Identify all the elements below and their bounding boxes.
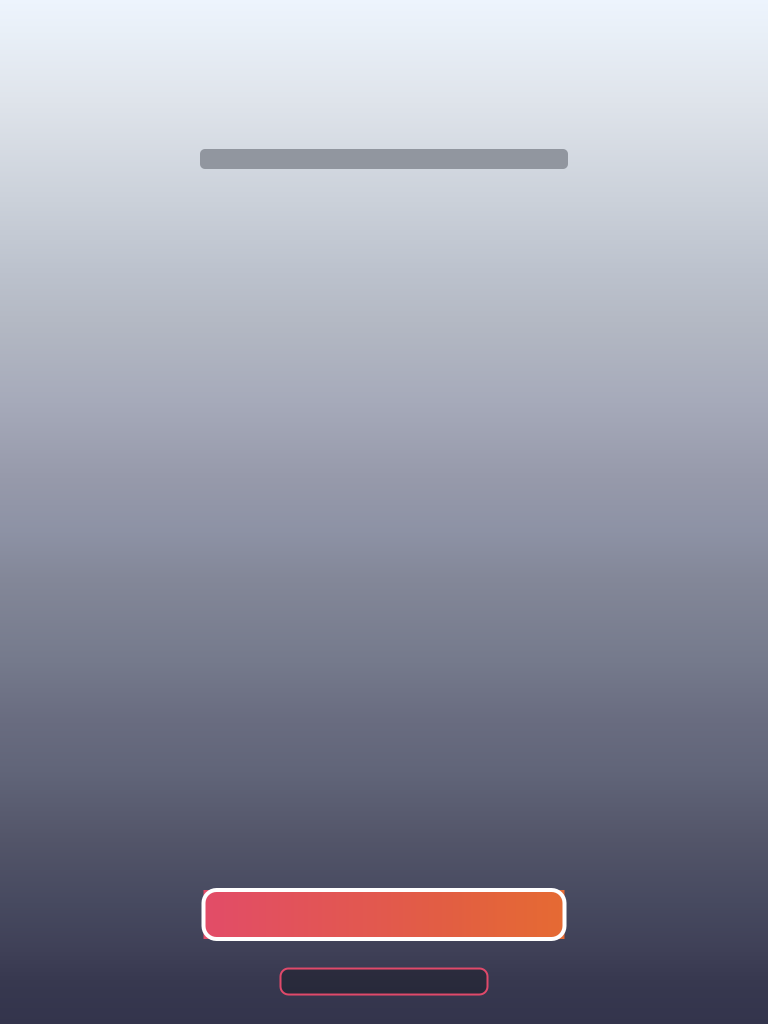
button[interactable]: Continue (203, 890, 564, 939)
button[interactable]: Skip (280, 968, 487, 994)
